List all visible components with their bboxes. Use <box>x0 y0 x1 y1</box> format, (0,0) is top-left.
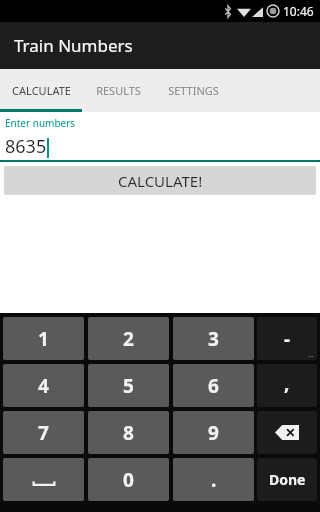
staticText: , <box>284 370 290 396</box>
staticText: 0 <box>123 467 134 493</box>
button[interactable]: Minus <box>257 317 317 360</box>
staticText: Enter numbers <box>5 116 76 130</box>
button[interactable]: CALCULATE <box>0 69 82 112</box>
staticText: CALCULATE <box>12 83 71 98</box>
button[interactable]: 8635 <box>0 130 320 162</box>
button[interactable]: Done <box>257 458 317 501</box>
staticText: 9 <box>208 420 219 446</box>
button[interactable]: 8 <box>88 411 169 454</box>
button[interactable]: Comma <box>257 364 317 407</box>
button[interactable]: 6 <box>173 364 254 407</box>
staticText: 1 <box>38 326 49 352</box>
staticText: - <box>284 326 291 352</box>
staticText: SETTINGS <box>168 83 219 98</box>
button[interactable]: 0 <box>88 458 169 501</box>
staticText: Train Numbers <box>14 34 133 57</box>
staticText: 6 <box>208 373 219 399</box>
staticText: Done <box>269 470 306 489</box>
staticText: 4 <box>38 373 49 399</box>
button[interactable]: RESULTS <box>82 69 154 112</box>
staticText: ... <box>308 350 314 360</box>
staticText: RESULTS <box>96 83 141 98</box>
button[interactable]: SETTINGS <box>154 69 232 112</box>
button[interactable]: 1 <box>3 317 84 360</box>
staticText: 10:46 <box>283 3 314 19</box>
button[interactable]: 7 <box>3 411 84 454</box>
staticText: . <box>211 467 217 493</box>
staticText: 8635 <box>5 134 47 159</box>
button[interactable]: 5 <box>88 364 169 407</box>
button[interactable]: . <box>173 458 254 501</box>
staticText: 7 <box>38 420 49 446</box>
staticText: CALCULATE! <box>118 171 203 191</box>
button[interactable]: 2 <box>88 317 169 360</box>
staticText: 3 <box>208 326 219 352</box>
button[interactable]: Backspace <box>257 411 317 454</box>
staticText: 2 <box>123 326 134 352</box>
button[interactable]: 3 <box>173 317 254 360</box>
staticText: 5 <box>123 373 134 399</box>
button[interactable]: CALCULATE! <box>4 166 316 195</box>
button[interactable]: 9 <box>173 411 254 454</box>
staticText: 8 <box>123 420 134 446</box>
button[interactable]: Space <box>3 458 84 501</box>
button[interactable]: 4 <box>3 364 84 407</box>
